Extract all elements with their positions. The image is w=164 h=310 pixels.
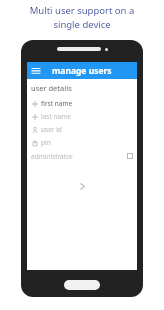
button[interactable]: administrator bbox=[31, 150, 133, 162]
staticText: last name bbox=[41, 112, 71, 121]
staticText: manage users bbox=[52, 65, 112, 77]
button[interactable]: first name bbox=[31, 97, 133, 110]
button[interactable]: pin bbox=[31, 136, 133, 149]
button[interactable]: user id bbox=[31, 123, 133, 136]
staticText: administrator bbox=[31, 152, 73, 161]
staticText: user id bbox=[41, 125, 62, 134]
button[interactable]: Next bbox=[75, 179, 89, 193]
staticText: first name bbox=[41, 99, 73, 108]
staticText: Multi user support on a single device bbox=[8, 4, 156, 31]
button[interactable]: Home bbox=[64, 280, 100, 290]
staticText: user details bbox=[31, 83, 72, 93]
button[interactable]: Open navigation menu bbox=[30, 65, 42, 77]
staticText: pin bbox=[41, 138, 51, 147]
button[interactable]: last name bbox=[31, 110, 133, 123]
